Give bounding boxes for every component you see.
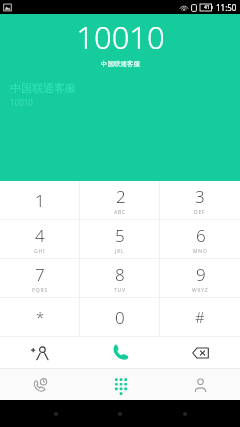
staticText: # <box>195 307 205 327</box>
button[interactable]: Add contact <box>0 337 80 368</box>
staticText: JKL <box>115 248 125 255</box>
button[interactable]: System key <box>176 405 194 423</box>
button[interactable]: 7 <box>0 259 80 297</box>
staticText: ABC <box>114 209 127 216</box>
button[interactable]: 0 <box>80 298 160 336</box>
button[interactable]: Contacts <box>160 369 240 400</box>
staticText: 3 <box>195 185 205 208</box>
staticText: 4 <box>35 224 45 247</box>
staticText: 5 <box>115 224 125 247</box>
button[interactable]: * <box>0 298 80 336</box>
staticText: MNO <box>193 248 208 255</box>
button[interactable]: 2 <box>80 181 160 219</box>
button[interactable]: 中国联通客服 <box>0 80 240 112</box>
staticText: 8 <box>115 263 125 286</box>
staticText: PQRS <box>32 287 48 294</box>
button[interactable]: 3 <box>160 181 240 219</box>
staticText: 10010 <box>76 16 165 58</box>
staticText: GHI <box>34 248 46 255</box>
button[interactable]: Call <box>80 337 160 368</box>
staticText: 1 <box>35 189 45 212</box>
staticText: TUV <box>114 287 126 294</box>
staticText: 10010 <box>10 97 33 108</box>
staticText: WXYZ <box>192 287 209 294</box>
staticText: DEF <box>194 209 206 216</box>
button[interactable]: 9 <box>160 259 240 297</box>
staticText: 中国联通客服 <box>101 60 140 68</box>
button[interactable]: 8 <box>80 259 160 297</box>
button[interactable]: 4 <box>0 220 80 258</box>
button[interactable]: 6 <box>160 220 240 258</box>
button[interactable]: # <box>160 298 240 336</box>
button[interactable]: Delete <box>160 337 240 368</box>
button[interactable]: Dialpad <box>80 369 160 400</box>
staticText: 41 <box>204 4 210 11</box>
staticText: 2 <box>116 185 126 208</box>
button[interactable]: System key <box>47 405 65 423</box>
staticText: 0 <box>115 306 125 329</box>
button[interactable]: 1 <box>0 181 80 219</box>
button[interactable]: Call history <box>0 369 80 400</box>
button[interactable]: 5 <box>80 220 160 258</box>
staticText: * <box>36 307 45 327</box>
staticText: 7 <box>35 263 45 286</box>
staticText: 9 <box>196 263 206 286</box>
staticText: 中国联通客服 <box>10 81 76 95</box>
staticText: 11:50 <box>216 2 237 13</box>
staticText: 6 <box>196 224 206 247</box>
button[interactable]: System key <box>111 405 129 423</box>
